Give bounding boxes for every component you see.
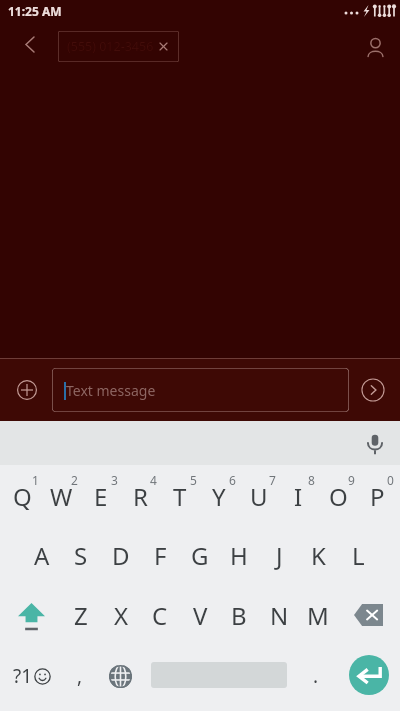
button[interactable]: T bbox=[160, 466, 200, 526]
button[interactable]: G bbox=[180, 525, 220, 585]
staticText: 5 bbox=[190, 472, 197, 486]
staticText: Text message bbox=[66, 381, 156, 400]
staticText: 6 bbox=[229, 472, 236, 486]
button[interactable]: H bbox=[219, 525, 259, 585]
button[interactable]: L bbox=[338, 525, 378, 585]
button[interactable]: P bbox=[357, 466, 397, 526]
button[interactable]: O bbox=[318, 466, 358, 526]
button[interactable]: B bbox=[219, 585, 259, 645]
button[interactable]: D bbox=[101, 525, 141, 585]
button[interactable]: W bbox=[41, 466, 81, 526]
button[interactable]: Enter bbox=[349, 655, 389, 695]
button[interactable]: Back bbox=[16, 30, 44, 58]
button[interactable]: S bbox=[61, 525, 101, 585]
button[interactable]: Text message bbox=[52, 368, 349, 412]
button[interactable]: E bbox=[81, 466, 121, 526]
staticText: L bbox=[352, 539, 365, 572]
staticText: W bbox=[50, 480, 73, 513]
staticText: H bbox=[230, 539, 248, 572]
staticText: F bbox=[154, 539, 167, 572]
staticText: 9 bbox=[348, 472, 355, 486]
button[interactable]: V bbox=[180, 585, 220, 645]
button[interactable]: Voice input bbox=[358, 427, 392, 461]
staticText: I bbox=[294, 480, 303, 513]
staticText: 4 bbox=[150, 472, 157, 486]
staticText: Q bbox=[13, 480, 32, 513]
staticText: , bbox=[77, 663, 83, 689]
button[interactable]: (555) 012-3456 bbox=[58, 31, 179, 62]
button[interactable]: I bbox=[278, 466, 318, 526]
button[interactable]: , bbox=[62, 646, 98, 706]
button[interactable]: Y bbox=[199, 466, 239, 526]
staticText: ?1 bbox=[13, 663, 33, 689]
button[interactable]: Backspace bbox=[339, 585, 398, 645]
staticText: 7 bbox=[269, 472, 276, 486]
staticText: N bbox=[270, 599, 289, 632]
staticText: G bbox=[191, 539, 209, 572]
staticText: K bbox=[311, 539, 326, 572]
staticText: E bbox=[94, 480, 108, 513]
staticText: P bbox=[370, 480, 385, 513]
button[interactable]: K bbox=[298, 525, 338, 585]
button[interactable]: F bbox=[140, 525, 180, 585]
staticText: 0 bbox=[387, 472, 394, 486]
button[interactable]: Change language bbox=[102, 646, 138, 706]
button[interactable]: Send bbox=[357, 374, 389, 406]
staticText: 1 bbox=[32, 472, 39, 486]
staticText: J bbox=[276, 539, 283, 572]
staticText: M bbox=[307, 599, 329, 632]
button[interactable]: N bbox=[259, 585, 299, 645]
staticText: . bbox=[313, 663, 319, 689]
button[interactable]: Attach bbox=[10, 373, 44, 407]
staticText: Y bbox=[212, 480, 226, 513]
staticText: R bbox=[133, 480, 148, 513]
staticText: C bbox=[152, 599, 168, 632]
button[interactable]: X bbox=[101, 585, 141, 645]
button[interactable]: J bbox=[259, 525, 299, 585]
staticText: 2 bbox=[71, 472, 78, 486]
button[interactable]: C bbox=[140, 585, 180, 645]
button[interactable]: U bbox=[239, 466, 279, 526]
staticText: (555) 012-3456 bbox=[67, 38, 154, 55]
button[interactable]: M bbox=[298, 585, 338, 645]
button[interactable]: Contact details bbox=[360, 32, 390, 62]
button[interactable]: . bbox=[298, 646, 334, 706]
staticText: V bbox=[193, 599, 208, 632]
button[interactable]: R bbox=[120, 466, 160, 526]
staticText: A bbox=[34, 539, 50, 572]
staticText: T bbox=[173, 480, 187, 513]
button[interactable]: Q bbox=[2, 466, 42, 526]
staticText: 3 bbox=[111, 472, 118, 486]
staticText: Z bbox=[74, 599, 88, 632]
staticText: 11:25 AM bbox=[8, 3, 62, 19]
staticText: B bbox=[231, 599, 247, 632]
button[interactable]: Z bbox=[61, 585, 101, 645]
button[interactable]: A bbox=[22, 525, 62, 585]
staticText: U bbox=[250, 480, 268, 513]
staticText: O bbox=[329, 480, 348, 513]
staticText: D bbox=[112, 539, 130, 572]
button[interactable]: Shift bbox=[2, 585, 61, 645]
button[interactable]: Symbols and emoji bbox=[4, 646, 59, 706]
staticText: S bbox=[74, 539, 88, 572]
staticText: X bbox=[114, 599, 129, 632]
staticText: 8 bbox=[308, 472, 315, 486]
